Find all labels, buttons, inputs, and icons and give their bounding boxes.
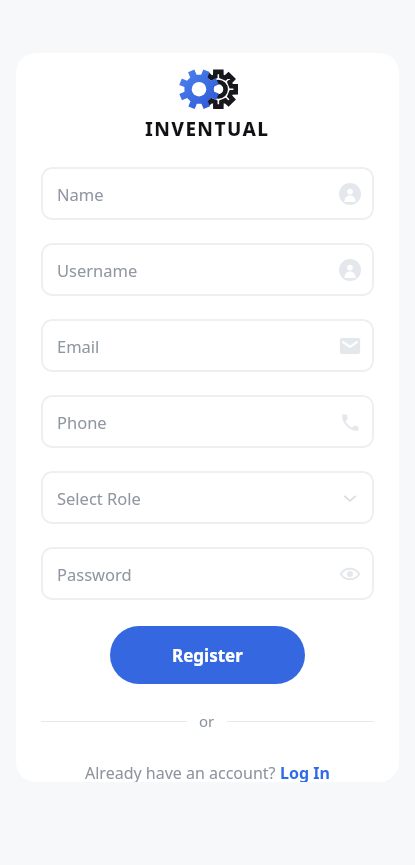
staticText: Email — [57, 335, 100, 357]
staticText: or — [199, 711, 215, 731]
button[interactable]: Email — [41, 319, 374, 372]
other: Email — [339, 335, 361, 357]
staticText: Select Role — [57, 487, 141, 509]
staticText: INVENTUAL — [145, 116, 270, 142]
staticText: Name — [57, 183, 104, 205]
other: Select Role — [339, 487, 361, 509]
button[interactable]: Password — [41, 547, 374, 600]
button[interactable]: Select Role — [41, 471, 374, 524]
button[interactable]: Log In — [280, 762, 330, 782]
button[interactable]: Register — [110, 626, 305, 684]
staticText: Register — [172, 644, 243, 667]
button[interactable]: Username — [41, 243, 374, 296]
staticText: Username — [57, 259, 138, 281]
other: Password — [339, 563, 361, 585]
staticText: Log In — [280, 762, 330, 782]
other: Username — [339, 259, 361, 281]
other: Phone — [339, 411, 361, 433]
staticText: Already have an account? — [85, 762, 280, 782]
staticText: Phone — [57, 411, 107, 433]
button[interactable]: Name — [41, 167, 374, 220]
other: Name — [339, 183, 361, 205]
button[interactable]: Phone — [41, 395, 374, 448]
staticText: Password — [57, 563, 132, 585]
